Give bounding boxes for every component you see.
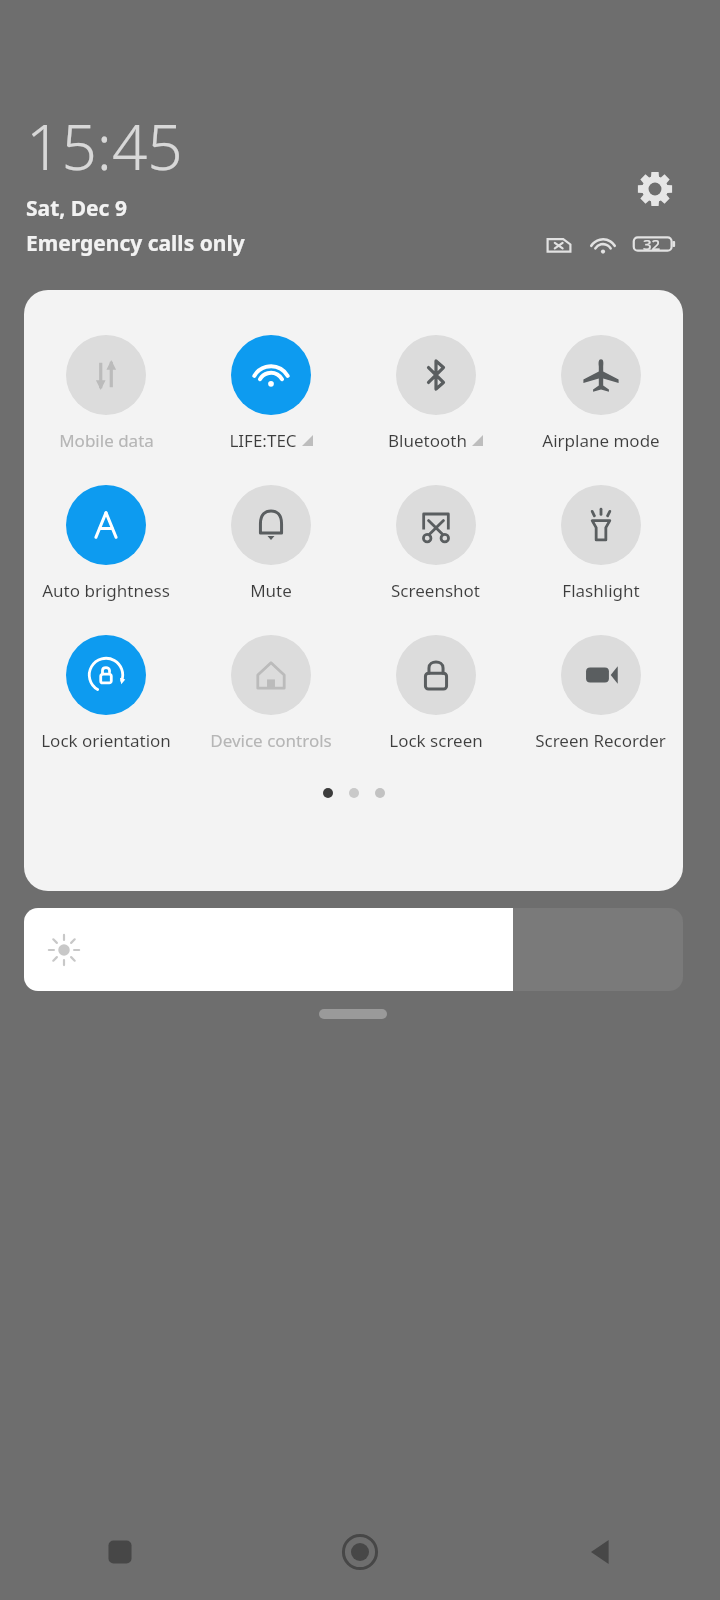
button[interactable]: LIFE:TEC xyxy=(188,335,353,452)
button[interactable]: Screenshot xyxy=(353,485,518,602)
staticText: Screen Recorder xyxy=(535,729,666,752)
button[interactable]: Bluetooth xyxy=(353,335,518,452)
button[interactable]: Lock orientation xyxy=(24,635,188,752)
button[interactable]: Home xyxy=(240,1504,480,1600)
button[interactable]: Device controls xyxy=(188,635,353,752)
staticText: 32 xyxy=(643,234,661,254)
button[interactable]: Back xyxy=(480,1504,720,1600)
staticText: 15:45 xyxy=(26,104,183,188)
staticText: Lock screen xyxy=(389,729,483,752)
staticText: Device controls xyxy=(210,729,332,752)
button[interactable]: Flashlight xyxy=(518,485,683,602)
button[interactable]: Mute xyxy=(188,485,353,602)
staticText: Mobile data xyxy=(59,429,154,452)
button[interactable]: Airplane mode xyxy=(518,335,683,452)
staticText: Flashlight xyxy=(562,579,640,602)
staticText: Auto brightness xyxy=(42,579,170,602)
button[interactable]: Mobile data xyxy=(24,335,188,452)
button[interactable]: Brightness xyxy=(24,908,683,991)
button[interactable]: Lock screen xyxy=(353,635,518,752)
staticText: Bluetooth xyxy=(388,429,467,452)
staticText: Mute xyxy=(250,579,292,602)
staticText: Airplane mode xyxy=(542,429,660,452)
button[interactable]: Recents xyxy=(0,1504,240,1600)
staticText: Lock orientation xyxy=(41,729,171,752)
button[interactable]: Auto brightness xyxy=(24,485,188,602)
staticText: Emergency calls only xyxy=(26,229,245,258)
button[interactable]: Screen Recorder xyxy=(518,635,683,752)
staticText: Screenshot xyxy=(391,579,480,602)
staticText: LIFE:TEC xyxy=(229,429,297,452)
staticText: Sat, Dec 9 xyxy=(26,194,127,223)
button[interactable]: Settings xyxy=(629,163,681,215)
